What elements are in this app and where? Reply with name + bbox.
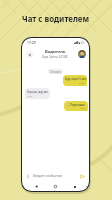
staticText: 17:29 bbox=[79, 82, 85, 85]
button[interactable]: Буду через 5 мин bbox=[63, 75, 87, 86]
staticText: Водитель bbox=[45, 49, 66, 55]
staticText: Буду через 5 мин bbox=[65, 77, 87, 81]
staticText: Чат с водителем bbox=[22, 14, 90, 25]
button[interactable]: Профиль водителя bbox=[78, 50, 86, 58]
button[interactable]: Хорошо, жду вас bbox=[25, 88, 50, 99]
button[interactable]: Домой bbox=[53, 184, 58, 189]
button[interactable]: Подъезжаю bbox=[64, 101, 88, 111]
staticText: 17:29 bbox=[27, 40, 36, 45]
button[interactable]: Назад bbox=[26, 51, 33, 58]
staticText: Лада Гранта, А123ВС bbox=[42, 55, 69, 59]
staticText: Сегодня bbox=[50, 70, 61, 74]
staticText: 17:33 bbox=[80, 107, 86, 110]
button[interactable]: Назад bbox=[34, 184, 39, 189]
staticText: Хорошо, жду вас bbox=[27, 90, 49, 94]
staticText: Введите сообщение bbox=[33, 174, 63, 178]
button[interactable]: Вложение bbox=[25, 173, 31, 179]
staticText: Подъезжаю bbox=[70, 103, 85, 107]
staticText: 17:30 bbox=[27, 95, 33, 98]
button[interactable]: Недавние bbox=[72, 184, 77, 189]
button[interactable]: Отправить bbox=[79, 173, 86, 180]
